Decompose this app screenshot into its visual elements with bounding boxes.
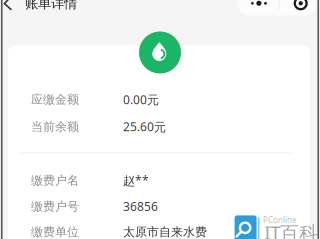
button[interactable]: Back bbox=[0, 0, 320, 239]
staticText: 25.60元 bbox=[123, 119, 166, 135]
staticText: PConline bbox=[263, 215, 297, 225]
staticText: 36856 bbox=[123, 198, 158, 214]
staticText: 缴费户名 bbox=[31, 173, 79, 188]
staticText: 太原市自来水费 bbox=[123, 225, 207, 239]
staticText: 0.00元 bbox=[123, 91, 159, 107]
staticText: 赵** bbox=[123, 172, 149, 188]
staticText: 缴费户号 bbox=[31, 199, 79, 214]
staticText: 当前余额 bbox=[31, 119, 79, 134]
staticText: 账单详情 bbox=[25, 0, 77, 12]
staticText: 应缴金额 bbox=[31, 92, 79, 107]
button[interactable]: More bbox=[0, 0, 320, 239]
button[interactable]: Close bbox=[0, 0, 320, 239]
staticText: IT百科 bbox=[264, 220, 318, 239]
staticText: 缴费单位 bbox=[31, 225, 79, 239]
